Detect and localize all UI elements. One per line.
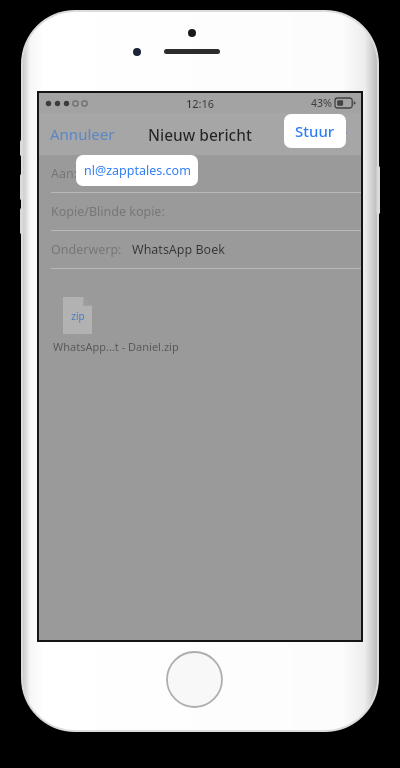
staticText: Kopie/Blinde kopie: <box>51 203 165 220</box>
staticText: Stuur <box>295 121 335 141</box>
staticText: Onderwerp: <box>51 241 122 258</box>
button[interactable]: Home <box>166 651 223 708</box>
button[interactable]: zip <box>53 297 179 354</box>
staticText: Aan: <box>51 165 78 182</box>
button[interactable]: Onderwerp: <box>39 231 361 268</box>
staticText: 12:16 <box>186 96 215 111</box>
staticText: Stuur <box>308 124 348 144</box>
button[interactable]: Annuleer <box>50 113 115 155</box>
button[interactable]: Kopie/Blinde kopie: <box>39 193 361 230</box>
button[interactable]: nl@zapptales.com <box>76 155 198 186</box>
staticText: Annuleer <box>50 124 115 144</box>
staticText: 43% <box>311 96 332 110</box>
staticText: zip <box>71 309 85 323</box>
button[interactable]: Stuur <box>308 113 348 155</box>
staticText: Nieuw bericht <box>148 124 252 145</box>
button[interactable]: Stuur <box>284 114 346 148</box>
staticText: nl@zapptales.com <box>84 162 191 179</box>
staticText: WhatsApp...t - Daniel.zip <box>53 339 179 354</box>
button[interactable]: Aan: <box>39 155 361 192</box>
staticText: WhatsApp Boek <box>132 241 225 258</box>
